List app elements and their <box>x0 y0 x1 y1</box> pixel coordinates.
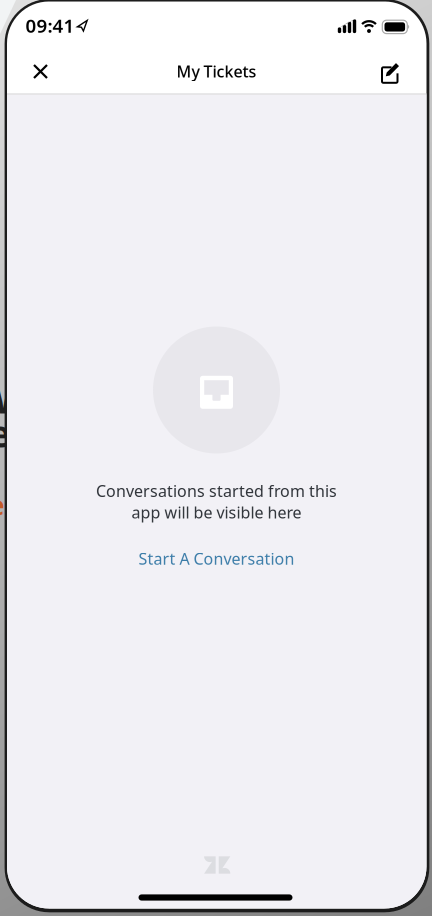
button[interactable]: Close <box>25 56 56 87</box>
staticText: Start A Conversation <box>138 548 294 569</box>
staticText: ve <box>0 408 10 458</box>
staticText: 09:41 <box>25 13 74 38</box>
staticText: My Tickets <box>176 61 256 82</box>
staticText: Conversations started from this <box>96 480 337 501</box>
staticText: e <box>0 487 5 523</box>
button[interactable]: Start A Conversation <box>130 542 302 575</box>
button[interactable]: New ticket <box>375 56 407 90</box>
staticText: aw <box>0 366 15 426</box>
staticText: app will be visible here <box>131 502 301 523</box>
